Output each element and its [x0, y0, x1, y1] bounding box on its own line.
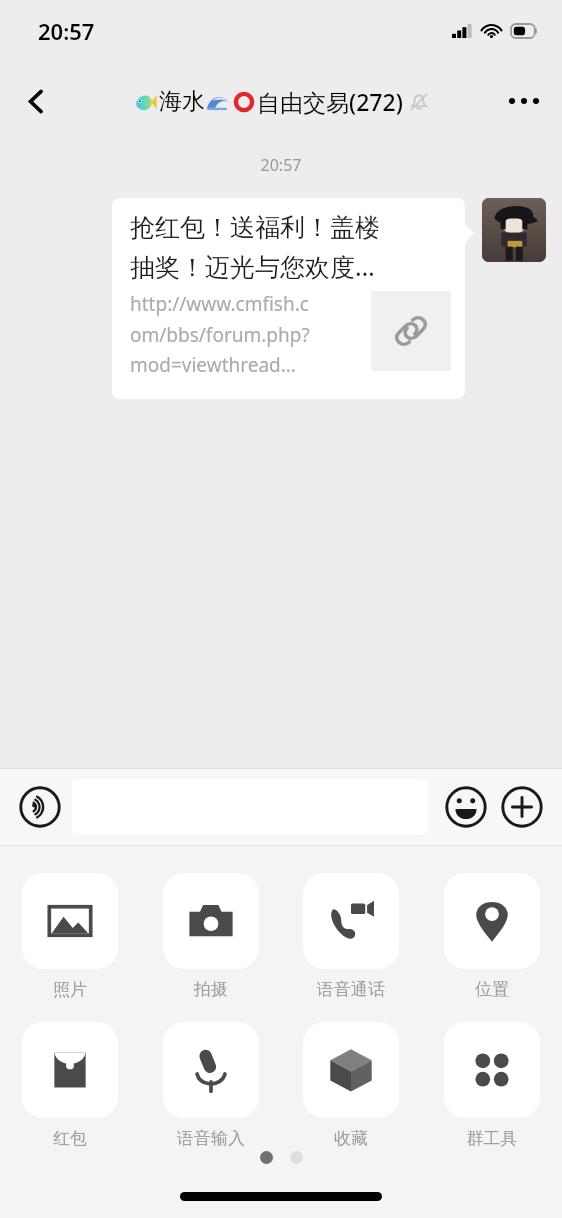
button[interactable]: 抢红包！送福利！盖楼 抽奖！迈光与您欢度…	[112, 198, 465, 399]
staticText: 海水	[159, 87, 205, 116]
button[interactable]: Back	[8, 73, 64, 129]
staticText: 红包	[22, 1128, 118, 1149]
staticText: 20:57	[0, 154, 562, 176]
staticText: 语音通话	[303, 979, 399, 1000]
staticText: 照片	[22, 979, 118, 1000]
staticText: 20:57	[38, 16, 95, 46]
button[interactable]: 收藏	[303, 1022, 399, 1149]
button[interactable]: 拍摄	[163, 873, 259, 1000]
button[interactable]: More	[496, 781, 548, 833]
staticText: 位置	[444, 979, 540, 1000]
button[interactable]: Avatar	[482, 198, 546, 262]
staticText: 自由交易(272)	[257, 86, 403, 117]
button[interactable]: 语音通话	[303, 873, 399, 1000]
staticText: http://www.cmfish.c om/bbs/forum.php? mo…	[130, 291, 367, 377]
button[interactable]: 照片	[22, 873, 118, 1000]
button[interactable]: Voice message	[14, 781, 66, 833]
staticText: 拍摄	[163, 979, 259, 1000]
button[interactable]: 红包	[22, 1022, 118, 1149]
button[interactable]: Emoji	[440, 781, 492, 833]
staticText: 抢红包！送福利！盖楼 抽奖！迈光与您欢度…	[130, 212, 380, 283]
other: Muted	[409, 92, 429, 112]
button[interactable]: More options	[496, 73, 552, 129]
staticText: 语音输入	[163, 1128, 259, 1149]
button[interactable]: 语音输入	[163, 1022, 259, 1149]
staticText: 群工具	[444, 1128, 540, 1149]
staticText: 收藏	[303, 1128, 399, 1149]
button[interactable]: 群工具	[444, 1022, 540, 1149]
button[interactable]: 位置	[444, 873, 540, 1000]
